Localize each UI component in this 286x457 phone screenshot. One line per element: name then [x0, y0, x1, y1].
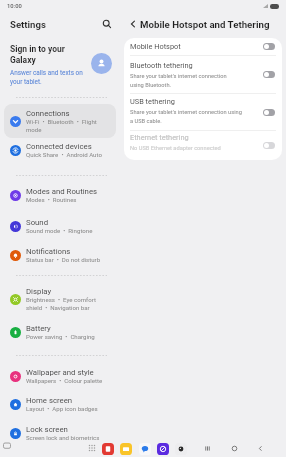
button[interactable]: Modes and Routines	[4, 182, 116, 208]
button[interactable]: Toggle	[263, 43, 275, 50]
staticText: Battery	[26, 324, 51, 333]
staticText: Quick Share • Android Auto	[26, 151, 102, 158]
staticText: Notifications	[26, 247, 71, 256]
staticText: Wallpapers • Colour palette	[26, 377, 103, 384]
staticText: Connections	[26, 109, 70, 118]
staticText: Wi-Fi • Bluetooth • Flight mode	[26, 118, 97, 133]
button[interactable]: App	[102, 443, 114, 455]
staticText: Power saving • Charging	[26, 333, 95, 340]
staticText: Bluetooth tethering	[130, 61, 193, 70]
staticText: Connected devices	[26, 142, 92, 151]
staticText: Lock screen	[26, 425, 68, 434]
staticText: Status bar • Do not disturb	[26, 256, 101, 263]
button[interactable]: Recents	[201, 442, 214, 455]
button[interactable]: Home screen	[4, 391, 116, 417]
staticText: Share your tablet's internet connection …	[130, 109, 258, 124]
staticText: Modes • Routines	[26, 196, 77, 203]
button[interactable]: Apps	[86, 442, 98, 454]
button[interactable]: Sign in to your Galaxy	[10, 40, 112, 88]
staticText: Sign in to your Galaxy	[10, 44, 65, 65]
staticText: Mobile Hotspot and Tethering	[140, 19, 270, 30]
staticText: 10:00	[7, 3, 22, 10]
button[interactable]: Bluetooth tethering	[130, 56, 276, 93]
staticText: Sound mode • Ringtone	[26, 227, 93, 234]
staticText: Mobile Hotspot	[130, 42, 181, 51]
staticText: Brightness • Eye comfort shield • Naviga…	[26, 296, 96, 311]
button[interactable]: USB tethering	[130, 94, 276, 130]
staticText: Screen lock and biometrics	[26, 434, 100, 441]
button[interactable]: Search	[99, 16, 115, 32]
button[interactable]: App	[175, 443, 187, 455]
staticText: Settings	[10, 19, 46, 30]
staticText: Modes and Routines	[26, 187, 98, 196]
button[interactable]: Toggle	[263, 142, 275, 149]
button[interactable]: Home	[228, 442, 241, 455]
button[interactable]: DeX	[1, 440, 13, 452]
button[interactable]: Notifications	[4, 242, 116, 268]
button[interactable]: Lock screen	[4, 420, 116, 446]
staticText: Home screen	[26, 396, 73, 405]
button[interactable]: Toggle	[263, 109, 275, 116]
button[interactable]: Sound	[4, 213, 116, 239]
button[interactable]: Display	[4, 282, 116, 316]
button[interactable]: Mobile Hotspot	[130, 38, 276, 55]
staticText: Layout • App icon badges	[26, 405, 98, 412]
staticText: No USB Ethernet adapter connected	[130, 145, 258, 152]
button[interactable]: Back	[126, 17, 140, 31]
staticText: Sound	[26, 218, 49, 227]
button[interactable]: App	[157, 443, 169, 455]
button[interactable]: Battery	[4, 319, 116, 345]
button[interactable]: App	[120, 443, 132, 455]
button[interactable]: Connections	[4, 104, 116, 138]
button[interactable]: Back	[254, 442, 267, 455]
button[interactable]: Toggle	[263, 71, 275, 78]
button[interactable]: App	[139, 443, 151, 455]
staticText: Wallpaper and style	[26, 368, 94, 377]
button[interactable]: Connected devices	[4, 137, 116, 163]
staticText: Ethernet tethering	[130, 133, 189, 142]
staticText: USB tethering	[130, 97, 175, 106]
button[interactable]: Wallpaper and style	[4, 363, 116, 389]
staticText: Display	[26, 287, 52, 296]
button[interactable]: Ethernet tethering	[130, 131, 276, 160]
staticText: Share your tablet's internet connection …	[130, 73, 258, 88]
staticText: Answer calls and texts on your tablet.	[10, 69, 83, 85]
